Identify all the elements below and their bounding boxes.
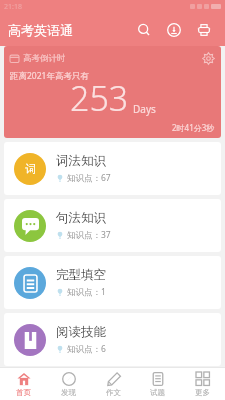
button[interactable]: Download — [159, 15, 189, 45]
staticText: 高考英语通 — [8, 22, 73, 38]
staticText: 阅读技能 — [56, 324, 106, 340]
staticText: 高考倒计时 — [23, 53, 66, 64]
button[interactable]: 词 — [4, 142, 221, 195]
staticText: 21:18 — [4, 2, 22, 12]
button[interactable]: 高考倒计时 — [4, 46, 221, 138]
staticText: 距离2021年高考只有 — [10, 70, 89, 82]
button[interactable]: 更多 — [180, 367, 224, 400]
button[interactable]: 试题 — [135, 367, 179, 400]
button[interactable]: 发现 — [46, 367, 90, 400]
button[interactable]: 句法知识 — [4, 199, 221, 252]
staticText: 更多 — [195, 388, 210, 397]
button[interactable]: Print — [189, 15, 219, 45]
staticText: 253 — [70, 75, 129, 121]
staticText: 知识点：67 — [67, 172, 111, 184]
staticText: 首页 — [16, 388, 31, 397]
staticText: 知识点：1 — [67, 286, 106, 298]
staticText: 词 — [25, 162, 36, 176]
staticText: 句法知识 — [56, 210, 106, 226]
staticText: 发现 — [61, 388, 76, 397]
staticText: 知识点：37 — [67, 229, 111, 241]
button[interactable]: 首页 — [1, 367, 45, 400]
staticText: 知识点：6 — [67, 343, 106, 355]
button[interactable]: 阅读技能 — [4, 313, 221, 366]
button[interactable]: Search — [129, 15, 159, 45]
staticText: 词法知识 — [56, 153, 106, 169]
staticText: 完型填空 — [56, 267, 106, 283]
button[interactable]: Settings — [200, 50, 216, 66]
staticText: Days — [133, 102, 156, 116]
staticText: 试题 — [150, 388, 165, 397]
staticText: 作文 — [106, 388, 121, 397]
button[interactable]: 作文 — [91, 367, 135, 400]
button[interactable]: 完型填空 — [4, 256, 221, 309]
staticText: 2时41分3秒 — [172, 122, 215, 133]
